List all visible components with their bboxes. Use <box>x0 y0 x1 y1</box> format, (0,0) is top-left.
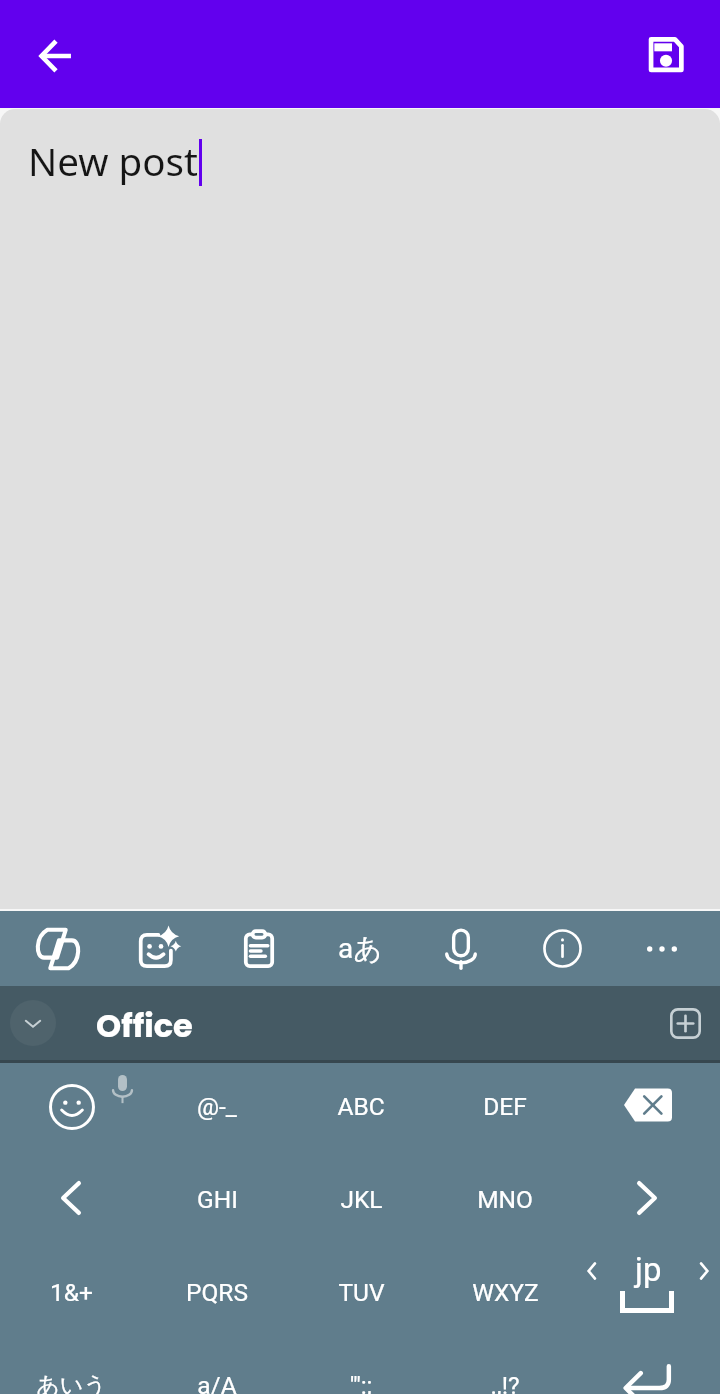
button[interactable]: Clipboard <box>219 911 299 986</box>
button[interactable]: Save post <box>631 21 699 89</box>
button[interactable]: Space <box>578 1248 720 1340</box>
staticText: @-_ <box>197 1092 237 1121</box>
button[interactable]: DEF <box>432 1060 578 1152</box>
button[interactable]: Add toolbar item <box>659 997 711 1049</box>
staticText: '":; <box>350 1371 372 1394</box>
button[interactable]: Voice input <box>421 911 501 986</box>
button[interactable]: Stickers <box>121 911 201 986</box>
staticText: ABC <box>337 1092 385 1121</box>
button[interactable]: Collapse toolbar <box>10 1000 56 1046</box>
button[interactable]: Move cursor right <box>587 1152 707 1244</box>
button[interactable]: MNO <box>432 1153 578 1245</box>
button[interactable]: Navigate back <box>22 22 90 90</box>
button[interactable]: Emoji <box>12 1061 132 1153</box>
button[interactable]: .,!? <box>432 1339 578 1394</box>
staticText: TUV <box>338 1278 385 1307</box>
button[interactable]: New post <box>0 108 720 911</box>
staticText: JKL <box>340 1185 383 1214</box>
button[interactable]: 1&+ <box>0 1246 144 1338</box>
button[interactable]: Backspace <box>588 1059 708 1151</box>
staticText: .,!? <box>490 1371 520 1394</box>
button[interactable]: TUV <box>288 1246 434 1338</box>
staticText: jp <box>635 1250 662 1289</box>
staticText: PQRS <box>186 1278 248 1307</box>
button[interactable]: あいう <box>0 1339 144 1394</box>
button[interactable]: GHI <box>144 1153 290 1245</box>
button[interactable]: '":; <box>288 1339 434 1394</box>
staticText: DEF <box>483 1092 527 1121</box>
button[interactable]: ABC <box>288 1060 434 1152</box>
button[interactable]: Info <box>522 911 602 986</box>
staticText: New post <box>28 135 198 187</box>
button[interactable]: Change language <box>320 911 400 986</box>
staticText: a/A <box>197 1371 237 1394</box>
staticText: WXYZ <box>472 1278 539 1307</box>
staticText: aあ <box>338 931 382 966</box>
button[interactable]: PQRS <box>144 1246 290 1338</box>
staticText: あいう <box>36 1371 107 1394</box>
button[interactable]: Keyboard settings <box>18 911 98 986</box>
button[interactable]: JKL <box>288 1153 434 1245</box>
button[interactable]: @-_ <box>144 1060 290 1152</box>
staticText: MNO <box>477 1185 533 1214</box>
button[interactable]: WXYZ <box>432 1246 578 1338</box>
button[interactable]: Enter <box>587 1342 707 1394</box>
staticText: 1&+ <box>50 1278 93 1307</box>
button[interactable]: Office <box>96 1003 193 1048</box>
button[interactable]: a/A <box>144 1339 290 1394</box>
button[interactable]: Move cursor left <box>11 1152 131 1244</box>
staticText: GHI <box>197 1185 238 1214</box>
button[interactable]: More options <box>622 911 702 986</box>
